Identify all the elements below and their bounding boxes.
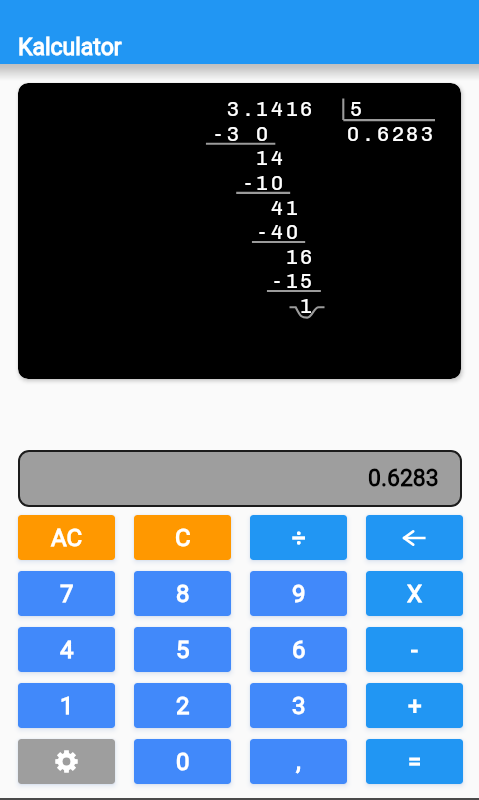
staticText: 0 — [256, 122, 268, 146]
staticText: 3 — [292, 692, 306, 720]
staticText: 1 — [256, 146, 268, 170]
button[interactable]: = — [366, 739, 463, 784]
button[interactable]: Backspace — [366, 515, 463, 560]
staticText: X — [407, 580, 423, 608]
staticText: 3 — [421, 122, 433, 146]
button[interactable]: 6 — [250, 627, 347, 672]
staticText: 5 — [176, 636, 190, 664]
staticText: 0 — [271, 171, 283, 195]
staticText: 4 — [271, 97, 283, 121]
button[interactable]: + — [366, 683, 463, 728]
staticText: Kalculator — [18, 34, 122, 61]
staticText: 0 — [347, 122, 359, 146]
button[interactable]: 1 — [18, 683, 115, 728]
staticText: 6 — [300, 245, 312, 269]
staticText: 1 — [60, 692, 74, 720]
staticText: 1 — [286, 269, 298, 293]
staticText: 6 — [300, 97, 312, 121]
button[interactable]: , — [250, 739, 347, 784]
staticText: , — [296, 748, 301, 776]
staticText: ÷ — [292, 524, 306, 552]
button[interactable]: C — [134, 515, 231, 560]
staticText: 7 — [60, 580, 74, 608]
staticText: C — [175, 524, 191, 552]
staticText: - — [256, 220, 268, 244]
staticText: 2 — [176, 692, 190, 720]
staticText: . — [242, 97, 254, 121]
button[interactable]: ÷ — [250, 515, 347, 560]
staticText: 9 — [292, 580, 306, 608]
staticText: . — [362, 122, 374, 146]
button[interactable]: X — [366, 571, 463, 616]
staticText: 3 — [227, 122, 239, 146]
button[interactable]: 4 — [18, 627, 115, 672]
staticText: 1 — [256, 171, 268, 195]
button[interactable]: 0.6283 — [18, 450, 462, 507]
button[interactable]: 7 — [18, 571, 115, 616]
staticText: + — [408, 692, 422, 720]
staticText: 1 — [256, 97, 268, 121]
staticText: AC — [51, 524, 83, 552]
staticText: 3 — [227, 97, 239, 121]
staticText: 2 — [392, 122, 404, 146]
staticText: - — [212, 122, 224, 146]
staticText: 5 — [300, 269, 312, 293]
staticText: 6 — [292, 636, 306, 664]
staticText: 1 — [286, 245, 298, 269]
staticText: 4 — [271, 196, 283, 220]
staticText: 4 — [271, 220, 283, 244]
staticText: 1 — [286, 97, 298, 121]
button[interactable]: 3 — [250, 683, 347, 728]
staticText: - — [271, 269, 283, 293]
staticText: = — [408, 748, 422, 776]
button[interactable]: 9 — [250, 571, 347, 616]
button[interactable]: Settings — [18, 739, 115, 784]
button[interactable]: 2 — [134, 683, 231, 728]
staticText: 1 — [300, 294, 312, 318]
staticText: 0.6283 — [368, 465, 439, 492]
staticText: 1 — [286, 196, 298, 220]
button[interactable]: 8 — [134, 571, 231, 616]
button[interactable]: 5 — [134, 627, 231, 672]
button[interactable]: AC — [18, 515, 115, 560]
staticText: 0 — [176, 748, 190, 776]
staticText: 8 — [176, 580, 190, 608]
staticText: 0 — [286, 220, 298, 244]
staticText: 5 — [350, 97, 362, 121]
button[interactable]: 0 — [134, 739, 231, 784]
staticText: - — [242, 171, 254, 195]
staticText: 6 — [377, 122, 389, 146]
staticText: - — [411, 636, 418, 664]
staticText: 4 — [60, 636, 74, 664]
staticText: 4 — [271, 146, 283, 170]
staticText: 8 — [406, 122, 418, 146]
button[interactable]: - — [366, 627, 463, 672]
